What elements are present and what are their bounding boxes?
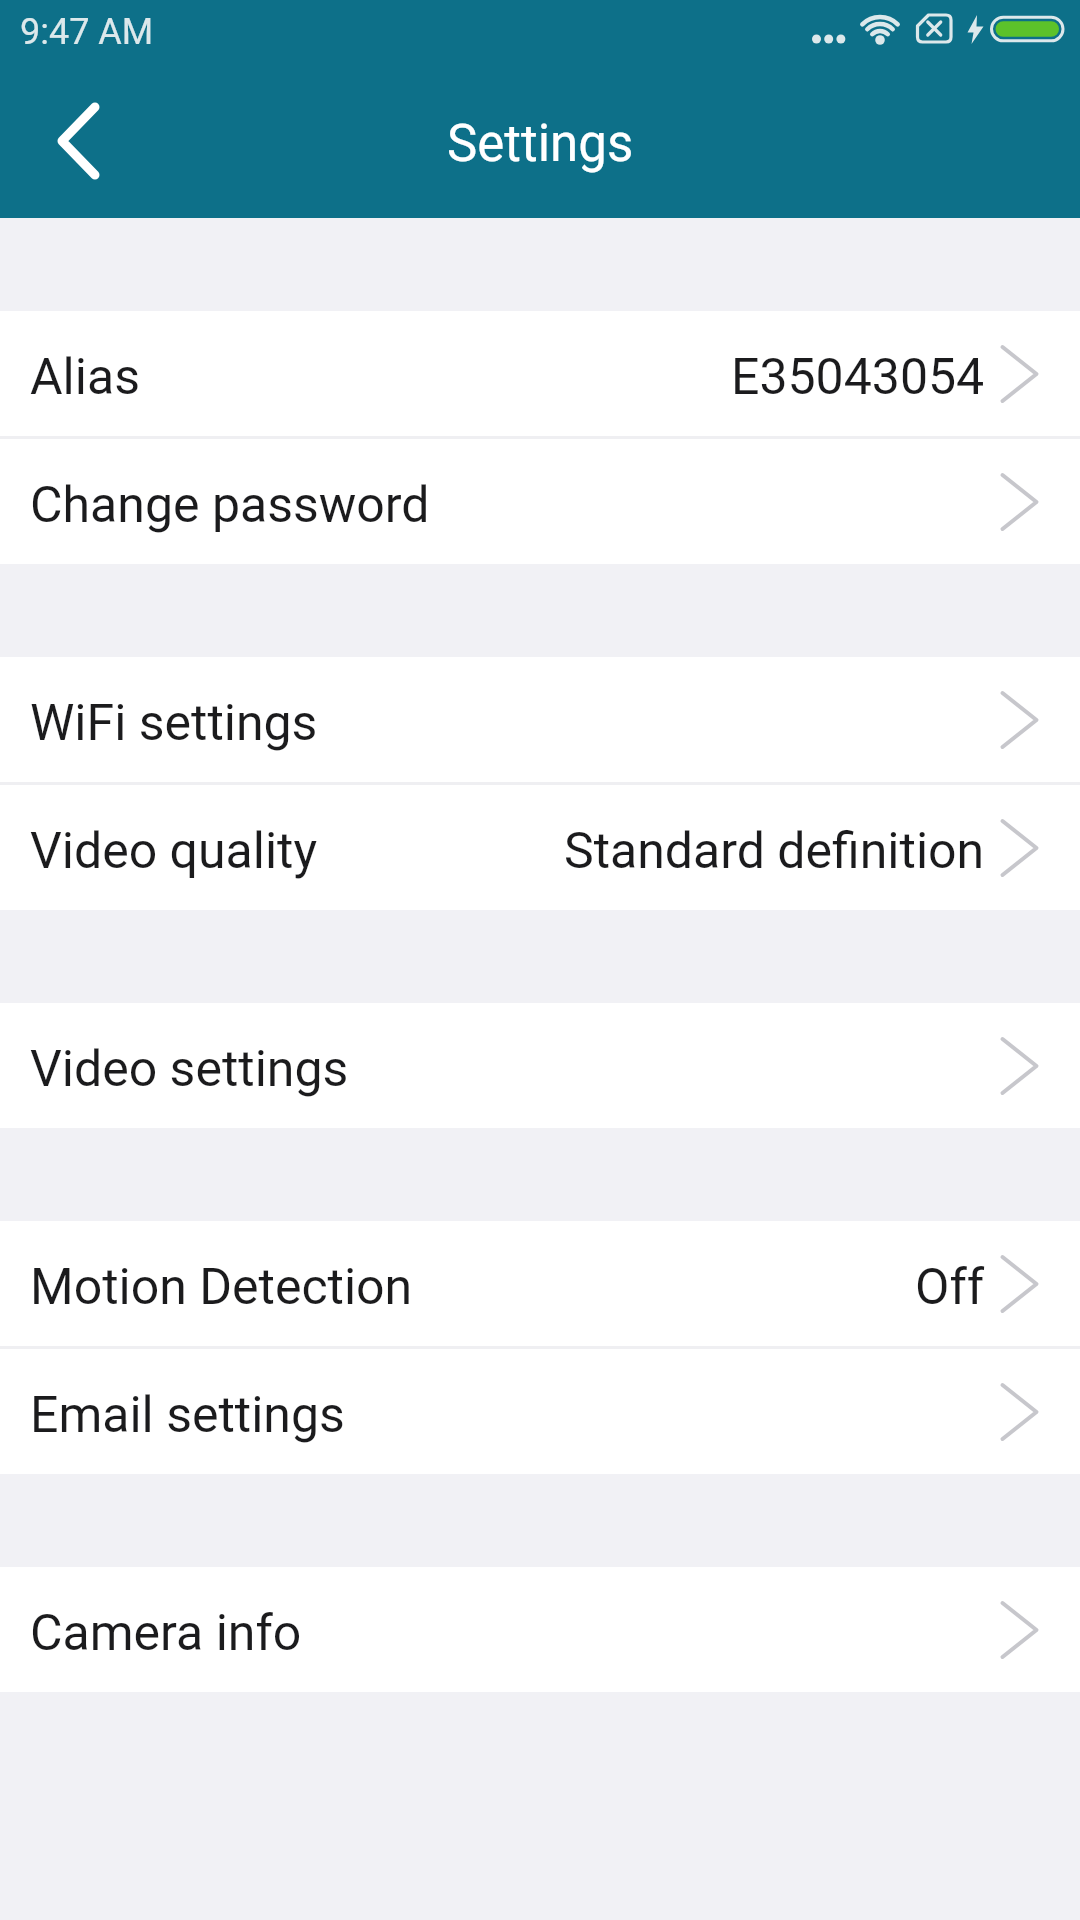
staticText: Settings: [447, 114, 634, 174]
button[interactable]: Alias: [0, 311, 1080, 436]
staticText: Motion Detection: [30, 1258, 413, 1317]
staticText: Camera info: [30, 1604, 302, 1663]
staticText: Standard definition: [564, 822, 985, 881]
button[interactable]: Video quality: [0, 785, 1080, 910]
staticText: Alias: [30, 348, 140, 407]
button[interactable]: Camera info: [0, 1567, 1080, 1692]
button[interactable]: Video settings: [0, 1003, 1080, 1128]
staticText: Email settings: [30, 1386, 345, 1445]
staticText: E35043054: [731, 348, 985, 407]
staticText: Off: [915, 1258, 985, 1317]
button[interactable]: WiFi settings: [0, 657, 1080, 782]
staticText: WiFi settings: [30, 694, 318, 753]
staticText: Video settings: [30, 1040, 349, 1099]
button[interactable]: Motion Detection: [0, 1221, 1080, 1346]
button[interactable]: [37, 86, 119, 196]
staticText: 9:47 AM: [20, 11, 154, 53]
staticText: Video quality: [30, 822, 318, 881]
button[interactable]: Email settings: [0, 1349, 1080, 1474]
staticText: Change password: [30, 476, 430, 535]
button[interactable]: Change password: [0, 439, 1080, 564]
